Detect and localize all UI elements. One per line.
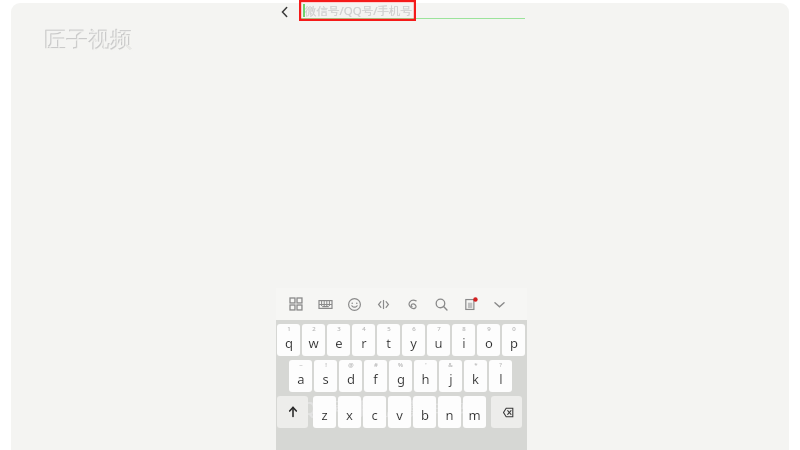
staticText: * [474,361,478,369]
button[interactable]: % [389,360,412,392]
staticText: 微信号/QQ号/手机号 [305,3,413,19]
staticText: ? [499,361,502,369]
button[interactable]: 3 [327,324,350,356]
button[interactable]: Back [274,1,296,23]
button[interactable]: Emoji [340,288,369,320]
button[interactable]: Number pad [311,288,340,320]
button[interactable]: n [438,396,461,428]
staticText: d [347,370,355,388]
staticText: u [434,334,443,352]
staticText: l [499,370,503,388]
staticText: r [361,334,367,352]
button[interactable]: # [364,360,387,392]
button[interactable]: @ [339,360,362,392]
button[interactable]: Shift [277,396,308,428]
button[interactable]: 0 [502,324,525,356]
staticText: ' [425,361,427,369]
staticText: 5 [387,325,391,333]
staticText: x [346,406,353,424]
button[interactable]: 6 [402,324,425,356]
staticText: v [396,406,403,424]
staticText: h [421,370,430,388]
staticText: QQ号 手机号莫非一辙 [302,396,479,421]
staticText: 3 [337,325,341,333]
staticText: z [321,406,328,424]
staticText: y [410,334,417,352]
button[interactable]: Clipboard [456,288,485,320]
button[interactable]: Keyboard layouts [282,288,311,320]
staticText: b [421,406,429,424]
button[interactable]: 7 [427,324,450,356]
button[interactable]: x [338,396,361,428]
button[interactable]: 8 [452,324,475,356]
button[interactable]: z [313,396,336,428]
button[interactable]: 5 [377,324,400,356]
button[interactable]: Search [427,288,456,320]
button[interactable]: 9 [477,324,500,356]
staticText: k [472,370,479,388]
staticText: t [386,334,391,352]
staticText: 4 [362,325,366,333]
staticText: s [322,370,329,388]
staticText: o [485,334,493,352]
staticText: e [335,334,343,352]
button[interactable]: c [363,396,386,428]
button[interactable]: ? [489,360,512,392]
staticText: & [448,361,453,369]
staticText: 0 [512,325,516,333]
staticText: ! [325,361,327,369]
staticText: g [397,370,405,388]
staticText: 7 [437,325,441,333]
staticText: j [449,370,453,388]
button[interactable]: m [463,396,486,428]
staticText: ~ [299,361,303,369]
button[interactable]: Voice input [398,288,427,320]
button[interactable]: v [388,396,411,428]
button[interactable]: 4 [352,324,375,356]
button[interactable]: 微信号/QQ号/手机号 [299,0,416,21]
staticText: m [468,406,481,424]
staticText: 8 [462,325,466,333]
staticText: 1 [287,325,291,333]
button[interactable]: 2 [302,324,325,356]
staticText: q [285,334,293,352]
button[interactable]: Backspace [491,396,522,428]
staticText: i [462,334,466,352]
staticText: n [445,406,454,424]
button[interactable]: b [413,396,436,428]
button[interactable]: Hide keyboard [485,288,514,320]
button[interactable]: * [464,360,487,392]
staticText: 匠子视频 [44,26,132,54]
button[interactable]: Text editing [369,288,398,320]
button[interactable]: & [439,360,462,392]
button[interactable]: ! [314,360,337,392]
button[interactable]: ' [414,360,437,392]
staticText: 6 [412,325,416,333]
staticText: c [371,406,378,424]
staticText: 匠子视频 [45,27,133,55]
staticText: p [510,334,518,352]
button[interactable]: 1 [277,324,300,356]
staticText: f [373,370,378,388]
staticText: 9 [487,325,491,333]
staticText: w [308,334,319,352]
staticText: % [398,361,403,369]
staticText: 2 [312,325,316,333]
button[interactable]: ~ [289,360,312,392]
staticText: a [297,370,305,388]
staticText: # [374,361,378,369]
staticText: @ [348,361,354,369]
